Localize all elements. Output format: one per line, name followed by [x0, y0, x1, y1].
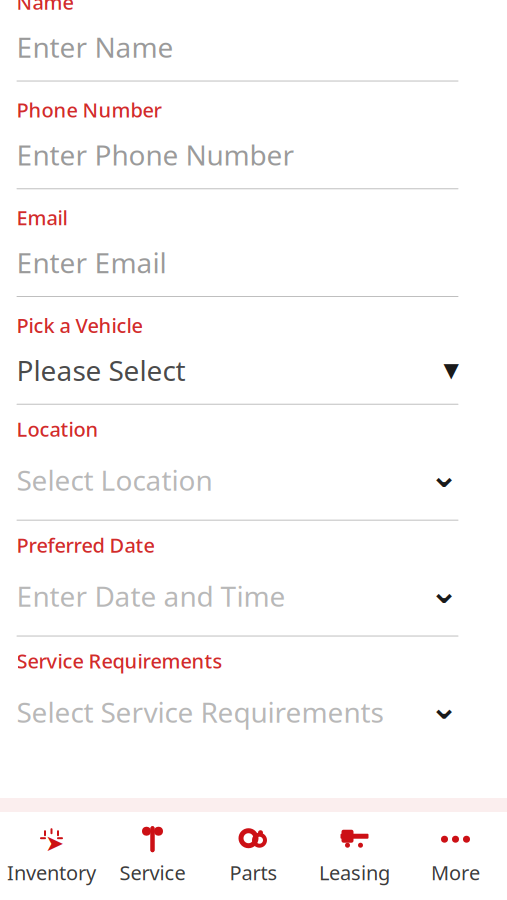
staticText: Location: [16, 416, 98, 442]
staticText: Name: [16, 0, 73, 15]
staticText: Enter Date and Time: [16, 577, 285, 614]
button[interactable]: Service: [102, 819, 203, 893]
staticText: ⌄: [429, 687, 458, 726]
staticText: Please Select: [16, 352, 185, 389]
staticText: More: [431, 859, 480, 886]
staticText: Preferred Date: [16, 532, 154, 558]
staticText: Parts: [229, 859, 277, 886]
staticText: Phone Number: [16, 96, 161, 123]
staticText: Select Location: [16, 461, 212, 499]
staticText: Service: [119, 859, 185, 886]
button[interactable]: Location: [16, 416, 458, 521]
button[interactable]: Leasing: [304, 819, 405, 893]
staticText: Pick a Vehicle: [16, 312, 142, 339]
staticText: Enter Phone Number: [16, 136, 294, 173]
button[interactable]: ➤: [1, 819, 102, 893]
staticText: Select Service Requirements: [16, 693, 383, 730]
button[interactable]: Pick a Vehicle: [16, 312, 458, 405]
staticText: ➤: [45, 830, 64, 856]
staticText: Enter Email: [16, 244, 166, 281]
button[interactable]: Preferred Date: [16, 532, 458, 637]
staticText: ▼: [443, 359, 458, 381]
staticText: ⌄: [429, 571, 458, 610]
button[interactable]: More: [405, 819, 506, 893]
staticText: ⌄: [429, 455, 458, 495]
staticText: Enter Name: [16, 28, 173, 65]
staticText: Service Requirements: [16, 648, 222, 674]
button[interactable]: Parts: [203, 819, 304, 893]
staticText: Inventory: [7, 859, 96, 886]
staticText: Leasing: [319, 859, 390, 886]
staticText: Email: [16, 204, 67, 231]
button[interactable]: Service Requirements: [16, 648, 458, 736]
